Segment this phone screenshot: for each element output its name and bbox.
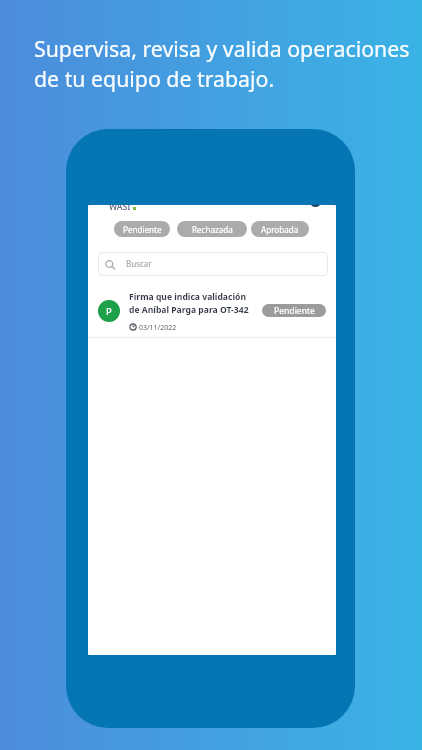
staticText: Rechazada [192, 224, 233, 235]
button[interactable]: P [88, 285, 336, 337]
staticText: Firma que indica validación [129, 291, 246, 303]
staticText: de Aníbal Parga para OT-342 [129, 304, 249, 316]
staticText: Pendiente [274, 305, 315, 317]
staticText: Aprobada [261, 224, 299, 235]
button[interactable]: Perfil [309, 205, 322, 207]
button[interactable]: Buscar [98, 252, 328, 276]
button[interactable]: Rechazada [177, 221, 247, 237]
staticText: P [106, 305, 112, 318]
staticText: Supervisa, revisa y valida operaciones d… [34, 34, 410, 93]
staticText: Buscar [126, 258, 152, 269]
button[interactable]: Aprobada [251, 221, 309, 237]
staticText: 03/11/2022 [139, 323, 177, 333]
staticText: Pendiente [123, 224, 162, 235]
staticText: WASI [109, 205, 131, 213]
button[interactable]: Pendiente [114, 221, 170, 237]
